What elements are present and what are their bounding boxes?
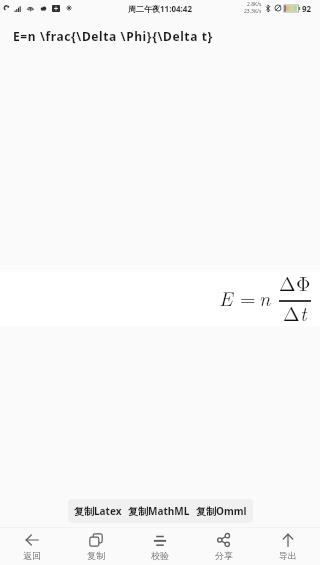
staticText: 复制Omml [196, 504, 247, 518]
staticText: n [259, 283, 271, 311]
staticText: t [300, 298, 307, 326]
staticText: Δ [283, 298, 300, 326]
staticText: E [219, 283, 233, 311]
staticText: Φ [296, 268, 311, 296]
button[interactable]: 导出 [256, 528, 320, 565]
staticText: 复制MathML [128, 504, 190, 518]
staticText: Δ [279, 268, 296, 296]
staticText: 返回 [23, 550, 41, 561]
button[interactable]: 复制Omml [196, 499, 247, 523]
button[interactable]: 分享 [192, 528, 256, 565]
staticText: 复制Latex [74, 504, 122, 518]
staticText: 校验 [151, 550, 169, 561]
button[interactable]: 复制 [64, 528, 128, 565]
staticText: 92 [302, 3, 312, 14]
staticText: = [240, 283, 256, 311]
staticText: 23.3K/s [244, 8, 262, 15]
button[interactable]: 复制MathML [128, 499, 190, 523]
button[interactable]: 校验 [128, 528, 192, 565]
button[interactable]: 复制Latex [74, 499, 122, 523]
staticText: 周二午夜11:04:42 [128, 3, 192, 14]
staticText: 复制 [87, 550, 105, 561]
staticText: E=n \frac{\Delta \Phi}{\Delta t} [13, 28, 213, 44]
button[interactable]: 返回 [0, 528, 64, 565]
staticText: 导出 [279, 550, 297, 561]
staticText: 2.8K/s [247, 1, 262, 8]
staticText: 分享 [215, 550, 233, 561]
